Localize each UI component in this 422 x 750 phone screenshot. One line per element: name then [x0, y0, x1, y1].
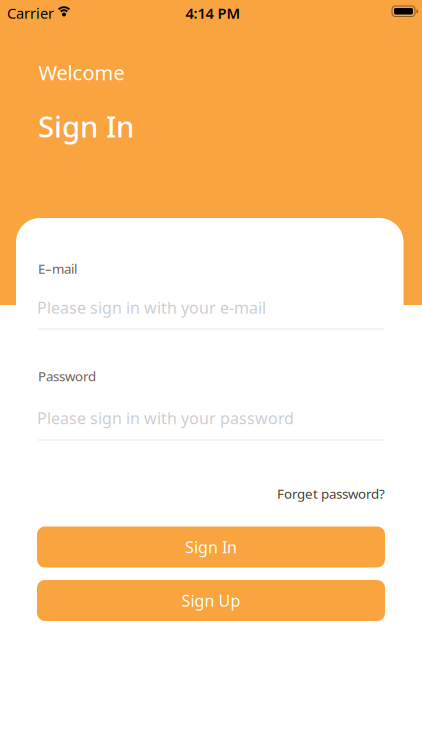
staticText: Carrier: [7, 3, 54, 23]
staticText: Password: [38, 367, 96, 385]
button[interactable]: Sign In: [37, 526, 385, 567]
staticText: Sign Up: [181, 590, 240, 611]
staticText: 4:14 PM: [185, 3, 240, 23]
staticText: Please sign in with your e-mail: [37, 297, 266, 318]
staticText: Sign In: [185, 536, 237, 558]
staticText: E–mail: [38, 260, 77, 277]
staticText: Sign In: [38, 106, 134, 145]
button[interactable]: Forget password?: [277, 485, 385, 502]
staticText: Please sign in with your password: [37, 407, 294, 429]
staticText: Forget password?: [277, 485, 385, 502]
staticText: Welcome: [38, 59, 124, 86]
button[interactable]: Sign Up: [37, 580, 385, 621]
